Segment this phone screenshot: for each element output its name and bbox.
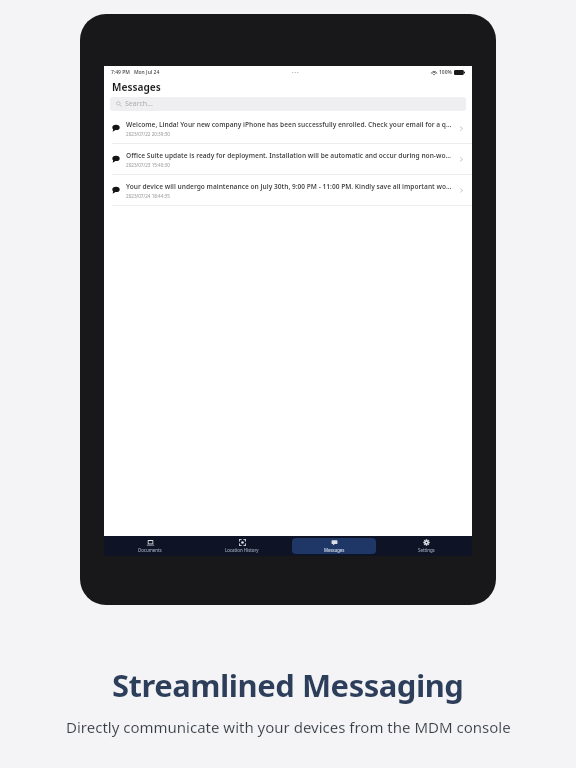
button[interactable]: Your device will undergo maintenance on … — [104, 175, 472, 205]
staticText: 100% — [439, 69, 452, 76]
staticText: Messages — [112, 80, 161, 94]
staticText: Search... — [125, 99, 153, 109]
staticText: 2023/07/24 18:44:35 — [126, 193, 170, 199]
button[interactable]: Messages — [292, 538, 376, 554]
button[interactable]: Welcome, Linda! Your new company iPhone … — [104, 113, 472, 143]
staticText: Welcome, Linda! Your new company iPhone … — [126, 120, 453, 129]
button[interactable]: Office Suite update is ready for deploym… — [104, 144, 472, 174]
staticText: Messages — [324, 547, 345, 553]
staticText: 7:49 PM Mon Jul 24 — [111, 69, 160, 76]
staticText: Documents — [138, 547, 162, 553]
staticText: Directly communicate with your devices f… — [66, 717, 511, 737]
other: Search — [116, 101, 122, 107]
staticText: 2023/07/22 20:39:30 — [126, 131, 170, 137]
staticText: • • • — [292, 70, 299, 75]
staticText: Your device will undergo maintenance on … — [126, 182, 453, 191]
staticText: Location History — [225, 547, 259, 553]
staticText: Office Suite update is ready for deploym… — [126, 151, 453, 160]
button[interactable]: Documents — [108, 538, 192, 554]
staticText: Streamlined Messaging — [112, 664, 464, 706]
staticText: Settings — [418, 547, 435, 553]
button[interactable]: Settings — [384, 538, 468, 554]
button[interactable]: Search — [110, 97, 466, 111]
button[interactable]: Location History — [200, 538, 284, 554]
staticText: 2023/07/23 15:40:30 — [126, 162, 170, 168]
